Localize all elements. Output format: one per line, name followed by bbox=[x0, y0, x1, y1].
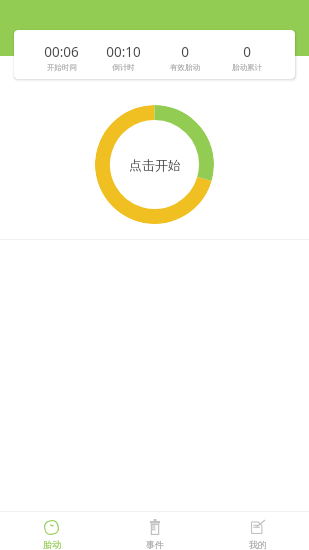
staticText: 胎动 bbox=[43, 539, 61, 550]
button[interactable]: 我的 bbox=[206, 512, 309, 550]
staticText: 00:06 bbox=[44, 43, 79, 61]
staticText: 胎动累计 bbox=[232, 63, 262, 72]
button[interactable]: 胎动 bbox=[0, 512, 103, 550]
staticText: 开始时间 bbox=[47, 63, 77, 72]
staticText: 0 bbox=[181, 43, 189, 61]
button[interactable]: 事件 bbox=[103, 512, 206, 550]
staticText: 00:10 bbox=[106, 43, 141, 61]
staticText: 倒计时 bbox=[112, 63, 135, 72]
staticText: 我的 bbox=[249, 539, 267, 550]
staticText: 0 bbox=[243, 43, 251, 61]
staticText: 有效胎动 bbox=[170, 63, 200, 72]
button[interactable]: 点击开始 bbox=[95, 105, 214, 224]
staticText: 事件 bbox=[146, 539, 164, 550]
staticText: 点击开始 bbox=[129, 157, 181, 173]
